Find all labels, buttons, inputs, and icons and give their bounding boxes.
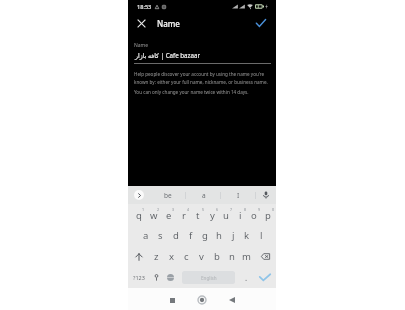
button[interactable]: r — [176, 204, 191, 225]
button[interactable]: f — [183, 225, 198, 246]
staticText: کافه بازار | Cafe bazaar — [135, 51, 200, 59]
button[interactable]: i — [233, 204, 247, 225]
button[interactable]: v — [194, 246, 209, 267]
button[interactable]: d — [168, 225, 183, 246]
staticText: 9 — [258, 207, 261, 212]
button[interactable]: t — [191, 204, 205, 225]
staticText: t — [196, 209, 200, 222]
staticText: u — [223, 209, 229, 222]
staticText: l — [260, 229, 263, 242]
button[interactable]: I — [221, 186, 256, 204]
button[interactable]: Back — [224, 292, 240, 308]
staticText: 3 — [172, 207, 175, 212]
button[interactable]: j — [226, 225, 240, 246]
button[interactable]: be — [150, 186, 186, 204]
staticText: b — [214, 250, 220, 263]
button[interactable]: x — [164, 246, 179, 267]
staticText: z — [154, 250, 159, 263]
button[interactable]: Voice input — [256, 186, 276, 204]
button[interactable]: Settings — [149, 267, 163, 288]
staticText: I — [237, 191, 240, 200]
button[interactable]: Recents — [164, 292, 180, 308]
button[interactable]: s — [153, 225, 168, 246]
staticText: Name — [134, 42, 149, 49]
button[interactable]: Home — [194, 292, 210, 308]
staticText: j — [232, 229, 235, 242]
staticText: 18:53 — [137, 3, 152, 11]
button[interactable]: w — [146, 204, 161, 225]
button[interactable]: k — [240, 225, 254, 246]
staticText: k — [244, 229, 250, 242]
staticText: p — [265, 209, 271, 222]
button[interactable]: m — [239, 246, 254, 267]
staticText: Name — [157, 18, 180, 29]
button[interactable]: e — [161, 204, 176, 225]
staticText: 4 — [187, 207, 190, 212]
staticText: English — [201, 275, 217, 281]
button[interactable]: English — [182, 271, 235, 284]
button[interactable]: p — [261, 204, 275, 225]
button[interactable]: a — [138, 225, 153, 246]
staticText: 6 — [216, 207, 219, 212]
staticText: g — [202, 229, 208, 242]
staticText: h — [216, 229, 222, 242]
staticText: s — [158, 229, 163, 242]
button[interactable]: Shift — [128, 246, 149, 267]
button[interactable]: l — [254, 225, 268, 246]
staticText: d — [173, 229, 179, 242]
button[interactable]: Save — [253, 15, 269, 31]
button[interactable]: Close — [133, 15, 149, 31]
button[interactable]: n — [224, 246, 239, 267]
staticText: 1 — [142, 207, 145, 212]
staticText: 0 — [272, 207, 275, 212]
button[interactable]: q — [131, 204, 146, 225]
button[interactable]: h — [212, 225, 226, 246]
staticText: o — [251, 209, 257, 222]
staticText: w — [150, 209, 158, 222]
staticText: a — [202, 191, 206, 200]
button[interactable]: ?123 — [128, 267, 149, 288]
staticText: i — [239, 209, 242, 222]
button[interactable]: . — [239, 267, 254, 288]
button[interactable]: Enter — [254, 267, 276, 288]
staticText: Help people discover your account by usi… — [134, 71, 275, 85]
staticText: 8 — [244, 207, 247, 212]
button[interactable]: Expand suggestions — [128, 186, 150, 204]
staticText: a — [143, 229, 149, 242]
staticText: . — [245, 272, 248, 283]
button[interactable]: b — [209, 246, 224, 267]
staticText: y — [210, 209, 215, 222]
staticText: ?123 — [133, 274, 145, 281]
staticText: q — [136, 209, 142, 222]
staticText: m — [242, 250, 251, 263]
staticText: n — [229, 250, 235, 263]
button[interactable]: Change language — [163, 267, 178, 288]
staticText: f — [189, 229, 193, 242]
staticText: 2 — [157, 207, 160, 212]
button[interactable]: Backspace — [254, 246, 276, 267]
button[interactable]: g — [198, 225, 212, 246]
staticText: You can only change your name twice with… — [134, 89, 249, 95]
staticText: 7 — [230, 207, 233, 212]
staticText: be — [164, 191, 172, 200]
button[interactable]: o — [247, 204, 261, 225]
staticText: r — [182, 209, 186, 222]
staticText: c — [184, 250, 189, 263]
button[interactable]: y — [205, 204, 219, 225]
staticText: e — [166, 209, 172, 222]
staticText: v — [199, 250, 204, 263]
button[interactable]: a — [186, 186, 221, 204]
staticText: 5 — [202, 207, 205, 212]
button[interactable]: u — [219, 204, 233, 225]
staticText: x — [169, 250, 175, 263]
button[interactable]: z — [149, 246, 164, 267]
button[interactable]: c — [179, 246, 194, 267]
